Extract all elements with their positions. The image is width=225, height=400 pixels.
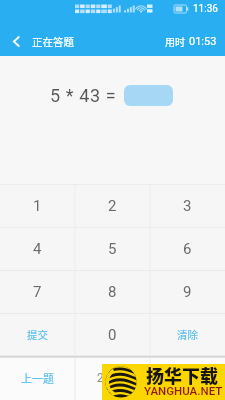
staticText: 4: [33, 240, 42, 258]
staticText: 上一题: [21, 370, 54, 386]
button[interactable]: 上一题: [0, 356, 75, 400]
button[interactable]: 4: [0, 227, 75, 270]
staticText: 6: [183, 240, 192, 258]
staticText: 清除: [177, 327, 198, 342]
button[interactable]: 7: [0, 270, 75, 313]
button[interactable]: 2: [75, 184, 150, 227]
staticText: 5: [108, 240, 117, 258]
staticText: 8: [108, 283, 117, 301]
staticText: 提交: [27, 327, 48, 342]
button[interactable]: 9: [150, 270, 225, 313]
button[interactable]: 提交: [0, 313, 75, 356]
button[interactable]: 2 / 20: [75, 356, 150, 400]
staticText: 7: [33, 283, 42, 301]
staticText: 01:53: [189, 35, 217, 48]
button[interactable]: 1: [0, 184, 75, 227]
staticText: 1: [33, 197, 42, 215]
staticText: 用时: [165, 34, 185, 48]
staticText: 扬华下载: [146, 362, 218, 388]
button[interactable]: 6: [150, 227, 225, 270]
button[interactable]: [124, 85, 173, 106]
button[interactable]: 8: [75, 270, 150, 313]
staticText: 下一题: [171, 370, 204, 386]
staticText: 11:36: [193, 3, 218, 15]
button[interactable]: 5: [75, 227, 150, 270]
button[interactable]: Back: [0, 22, 32, 60]
staticText: YANGHUA.NET: [144, 384, 223, 397]
button[interactable]: 0: [75, 313, 150, 356]
staticText: 5 * 43 =: [50, 85, 117, 106]
staticText: 9: [183, 283, 192, 301]
staticText: 2 / 20: [97, 371, 129, 385]
staticText: 正在答题: [32, 34, 74, 49]
button[interactable]: 下一题: [150, 356, 225, 400]
staticText: 2: [108, 197, 117, 215]
staticText: 3: [183, 197, 192, 215]
staticText: 0: [108, 326, 117, 344]
button[interactable]: 3: [150, 184, 225, 227]
button[interactable]: 清除: [150, 313, 225, 356]
